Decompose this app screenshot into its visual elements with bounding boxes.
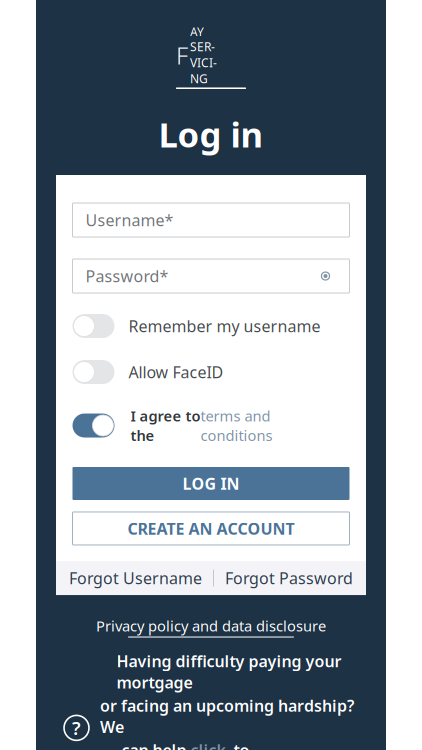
staticText: AY (190, 24, 204, 40)
staticText: Username* (85, 209, 173, 231)
staticText: F (176, 39, 188, 71)
staticText: terms and conditions (200, 406, 272, 445)
button[interactable]: click here (190, 739, 225, 750)
button[interactable]: Show password (314, 267, 336, 285)
staticText: to complete (225, 739, 297, 750)
button[interactable]: Forgot Username (58, 559, 213, 597)
staticText: Password* (85, 265, 168, 287)
button[interactable]: Forgot Password (214, 559, 364, 597)
staticText: click here (190, 739, 225, 750)
staticText: SERVICING (190, 39, 217, 86)
button[interactable]: Privacy policy and data disclosure (96, 611, 326, 642)
staticText: can help. Simply (121, 739, 190, 750)
button[interactable]: I agree to the (72, 406, 349, 445)
button[interactable]: CREATE AN ACCOUNT (72, 512, 349, 545)
button[interactable]: Allow FaceID (72, 360, 349, 384)
staticText: LOG IN (182, 473, 239, 494)
staticText: Log in (158, 111, 263, 157)
staticText: Having difficulty paying your mortgage (116, 650, 341, 693)
button[interactable]: Remember my username (72, 314, 349, 338)
staticText: I agree to the (130, 406, 200, 445)
staticText: Privacy policy and data disclosure (96, 616, 326, 635)
staticText: Forgot Username (69, 567, 202, 589)
staticText: Remember my username (128, 315, 320, 337)
staticText: or facing an upcoming hardship? We (100, 695, 358, 737)
button[interactable]: LOG IN (72, 467, 349, 500)
staticText: Forgot Password (225, 567, 353, 589)
staticText: CREATE AN ACCOUNT (127, 518, 294, 539)
staticText: Allow FaceID (128, 361, 223, 383)
staticText: ? (72, 715, 81, 740)
button[interactable]: Help (64, 715, 89, 740)
